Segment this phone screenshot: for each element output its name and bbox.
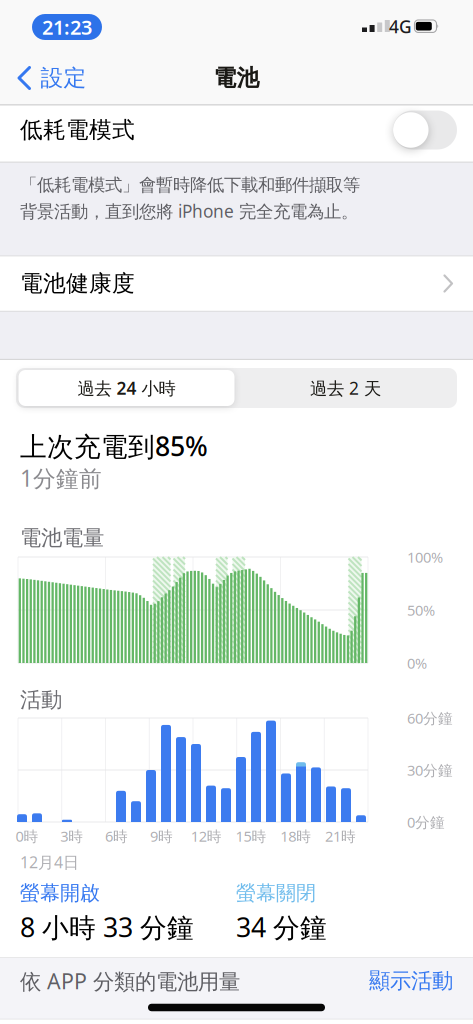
staticText: 低耗電模式 xyxy=(20,116,135,144)
staticText: 18時 xyxy=(280,826,311,846)
staticText: 12時 xyxy=(191,826,222,846)
staticText: 過去 24 小時 xyxy=(77,376,175,399)
staticText: 0分鐘 xyxy=(407,812,445,832)
staticText: 15時 xyxy=(235,826,266,846)
staticText: 50% xyxy=(407,600,435,620)
staticText: 活動 xyxy=(20,687,62,713)
staticText: 4G xyxy=(389,15,412,38)
staticText: 30分鐘 xyxy=(407,760,453,780)
button[interactable]: 過去 24 小時 xyxy=(18,370,234,406)
staticText: 34 分鐘 xyxy=(236,909,327,945)
staticText: 顯示活動 xyxy=(369,968,453,994)
button[interactable]: 電池健康度 xyxy=(0,256,473,310)
staticText: 「低耗電模式」會暫時降低下載和郵件擷取等 xyxy=(20,174,360,196)
button[interactable]: Personal Hotspot active xyxy=(32,14,102,40)
staticText: 螢幕開啟 xyxy=(20,881,100,905)
staticText: 21:23 xyxy=(42,14,92,40)
button[interactable]: Back to Settings xyxy=(9,56,86,99)
button[interactable]: 低耗電模式 xyxy=(393,110,457,149)
button[interactable]: 過去 2 天 xyxy=(237,370,453,406)
staticText: 0% xyxy=(407,653,427,673)
staticText: 過去 2 天 xyxy=(310,376,381,399)
staticText: 電池 xyxy=(213,64,259,92)
staticText: 21時 xyxy=(325,826,356,846)
staticText: 背景活動，直到您將 iPhone 完全充電為止。 xyxy=(20,199,358,222)
staticText: 3時 xyxy=(60,826,83,846)
button[interactable]: 顯示活動 xyxy=(13,968,453,994)
staticText: 螢幕關閉 xyxy=(236,881,316,905)
staticText: 6時 xyxy=(105,826,128,846)
staticText: 電池電量 xyxy=(20,525,104,551)
staticText: 8 小時 33 分鐘 xyxy=(20,909,194,945)
staticText: 9時 xyxy=(150,826,173,846)
staticText: 設定 xyxy=(40,64,86,92)
staticText: 依 APP 分類的電池用量 xyxy=(20,967,240,995)
staticText: 0時 xyxy=(15,826,38,846)
staticText: 12月4日 xyxy=(20,851,79,873)
staticText: 上次充電到85% xyxy=(20,428,208,464)
staticText: 1分鐘前 xyxy=(20,463,102,493)
staticText: 100% xyxy=(407,547,443,567)
staticText: 60分鐘 xyxy=(407,708,453,728)
staticText: 電池健康度 xyxy=(20,270,135,297)
